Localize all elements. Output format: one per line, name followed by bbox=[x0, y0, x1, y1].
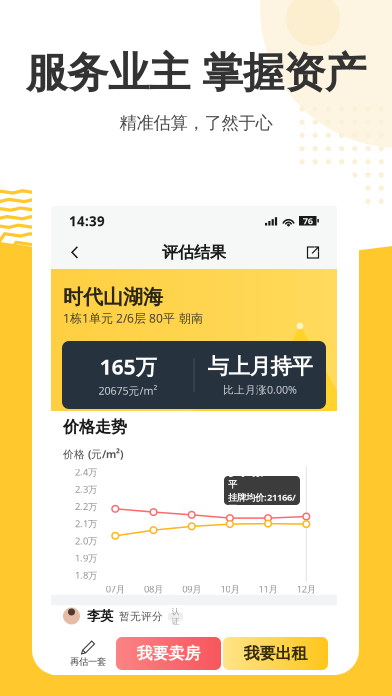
staticText: 11月 bbox=[259, 583, 278, 595]
staticText: 76 bbox=[303, 215, 313, 227]
staticText: 比上月涨0.00% bbox=[223, 382, 297, 397]
button[interactable]: 返回 bbox=[61, 238, 89, 266]
staticText: 评估结果 bbox=[162, 243, 226, 262]
staticText: 暂无评分 bbox=[119, 610, 163, 623]
staticText: 与上月持平 bbox=[207, 353, 312, 379]
staticText: 参考均价:20675/平 bbox=[228, 466, 296, 490]
staticText: 08月 bbox=[144, 583, 163, 595]
button[interactable]: 我要卖房 bbox=[116, 637, 221, 670]
staticText: 时代山湖海 bbox=[63, 285, 163, 309]
staticText: 2.2万 bbox=[75, 500, 97, 513]
staticText: 精准估算，了然于心 bbox=[119, 112, 272, 134]
button[interactable]: 再估一套 bbox=[60, 632, 116, 675]
staticText: 李英 bbox=[87, 608, 113, 624]
staticText: 2.1万 bbox=[75, 517, 97, 530]
staticText: 我要出租 bbox=[243, 644, 307, 663]
staticText: 挂牌均价:21166/平 bbox=[228, 491, 296, 515]
staticText: 服务业主 掌握资产 bbox=[26, 48, 366, 98]
staticText: 1.9万 bbox=[75, 552, 97, 564]
staticText: 再估一套 bbox=[70, 656, 106, 667]
staticText: 价格 (元/m²) bbox=[63, 447, 123, 461]
staticText: 2.3万 bbox=[75, 483, 97, 495]
staticText: 2.0万 bbox=[75, 535, 97, 547]
staticText: 09月 bbox=[182, 583, 201, 595]
button[interactable]: 我要出租 bbox=[223, 637, 328, 670]
staticText: 2.4万 bbox=[75, 466, 97, 478]
staticText: 价格走势 bbox=[63, 417, 127, 437]
staticText: 20675元/m² bbox=[98, 384, 157, 398]
staticText: 10月 bbox=[220, 583, 239, 595]
staticText: 1.8万 bbox=[75, 569, 97, 581]
staticText: 07月 bbox=[106, 583, 125, 595]
staticText: 14:39 bbox=[69, 212, 105, 230]
staticText: 1栋1单元 2/6层 80平 朝南 bbox=[63, 310, 203, 326]
button[interactable]: 分享 bbox=[299, 238, 327, 266]
staticText: 165万 bbox=[99, 352, 156, 381]
staticText: 12月 bbox=[297, 583, 316, 595]
staticText: 认证 bbox=[171, 607, 179, 626]
staticText: 我要卖房 bbox=[136, 644, 200, 663]
